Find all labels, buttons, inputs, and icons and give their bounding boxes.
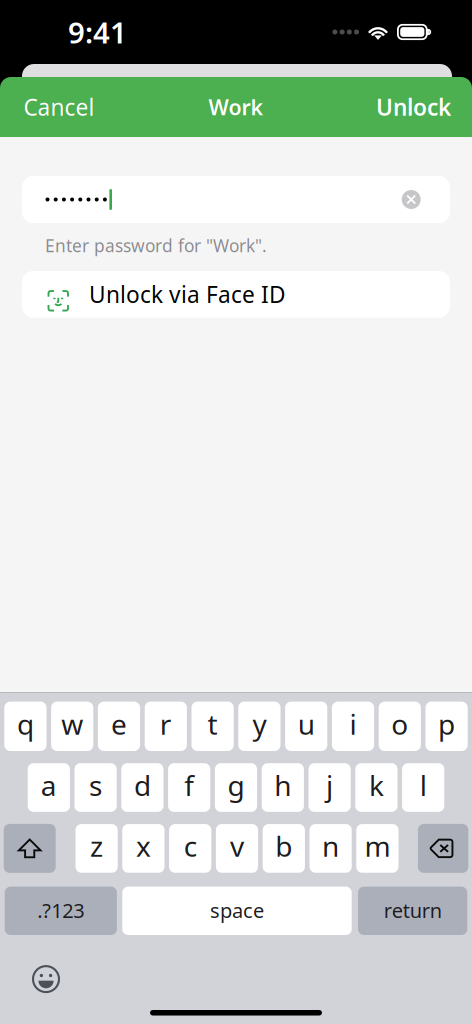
staticText: a [41, 766, 57, 804]
staticText: x [136, 827, 151, 864]
staticText: z [90, 827, 103, 864]
button[interactable]: Unlock via Face ID [0, 271, 472, 318]
button[interactable]: .?123 [5, 887, 117, 935]
button[interactable]: p [425, 702, 468, 751]
button[interactable]: space [122, 887, 352, 935]
button[interactable]: Delete [418, 824, 468, 873]
button[interactable]: i [332, 702, 374, 751]
staticText: g [227, 766, 244, 804]
button[interactable]: h [262, 763, 304, 812]
staticText: Unlock [376, 92, 451, 122]
button[interactable]: y [238, 702, 280, 751]
button[interactable]: a [28, 763, 70, 812]
button[interactable]: s [74, 763, 117, 812]
staticText: space [210, 897, 264, 924]
button[interactable]: x [122, 824, 164, 873]
staticText: y [252, 705, 266, 742]
staticText: q [17, 705, 34, 742]
staticText: Enter password for "Work". [45, 234, 267, 257]
button[interactable]: f [168, 763, 210, 812]
staticText: Unlock via Face ID [89, 279, 286, 309]
button[interactable]: n [309, 824, 352, 873]
button[interactable]: c [169, 824, 211, 873]
button[interactable]: e [98, 702, 140, 751]
staticText: w [61, 705, 83, 742]
staticText: b [275, 827, 292, 864]
button[interactable]: w [51, 702, 93, 751]
button[interactable]: g [215, 763, 257, 812]
button[interactable]: d [121, 763, 163, 812]
staticText: r [160, 705, 172, 742]
staticText: s [89, 766, 102, 804]
button[interactable]: t [191, 702, 234, 751]
staticText: return [384, 897, 442, 924]
staticText: j [326, 766, 333, 804]
button[interactable]: l [402, 763, 444, 812]
staticText: e [111, 705, 127, 742]
button[interactable]: q [4, 702, 46, 751]
button[interactable]: Emoji keyboard [32, 965, 60, 993]
button[interactable]: o [379, 702, 421, 751]
staticText: p [438, 705, 455, 742]
staticText: d [134, 766, 151, 804]
staticText: i [349, 705, 356, 742]
staticText: c [184, 827, 197, 864]
button[interactable]: Clear text [394, 179, 428, 219]
button[interactable]: r [145, 702, 187, 751]
staticText: m [364, 827, 390, 864]
staticText: 9:41 [68, 12, 127, 51]
button[interactable]: m [356, 824, 398, 873]
button[interactable]: k [355, 763, 397, 812]
staticText: Cancel [23, 92, 94, 122]
staticText: k [369, 766, 384, 804]
button[interactable]: Cancel [0, 77, 106, 137]
button[interactable]: u [285, 702, 327, 751]
button[interactable]: z [75, 824, 118, 873]
staticText: v [230, 827, 244, 864]
staticText: l [420, 766, 427, 804]
staticText: n [322, 827, 339, 864]
button[interactable]: v [216, 824, 258, 873]
staticText: .?123 [37, 897, 84, 924]
button[interactable]: Unlock [364, 77, 472, 137]
staticText: Work [208, 93, 263, 121]
staticText: h [274, 766, 291, 804]
staticText: u [298, 705, 315, 742]
staticText: t [208, 705, 218, 742]
button[interactable]: j [308, 763, 351, 812]
staticText: f [184, 766, 194, 804]
button[interactable]: return [358, 887, 467, 935]
button[interactable]: Shift [4, 824, 56, 873]
button[interactable]: b [263, 824, 305, 873]
staticText: o [391, 705, 408, 742]
